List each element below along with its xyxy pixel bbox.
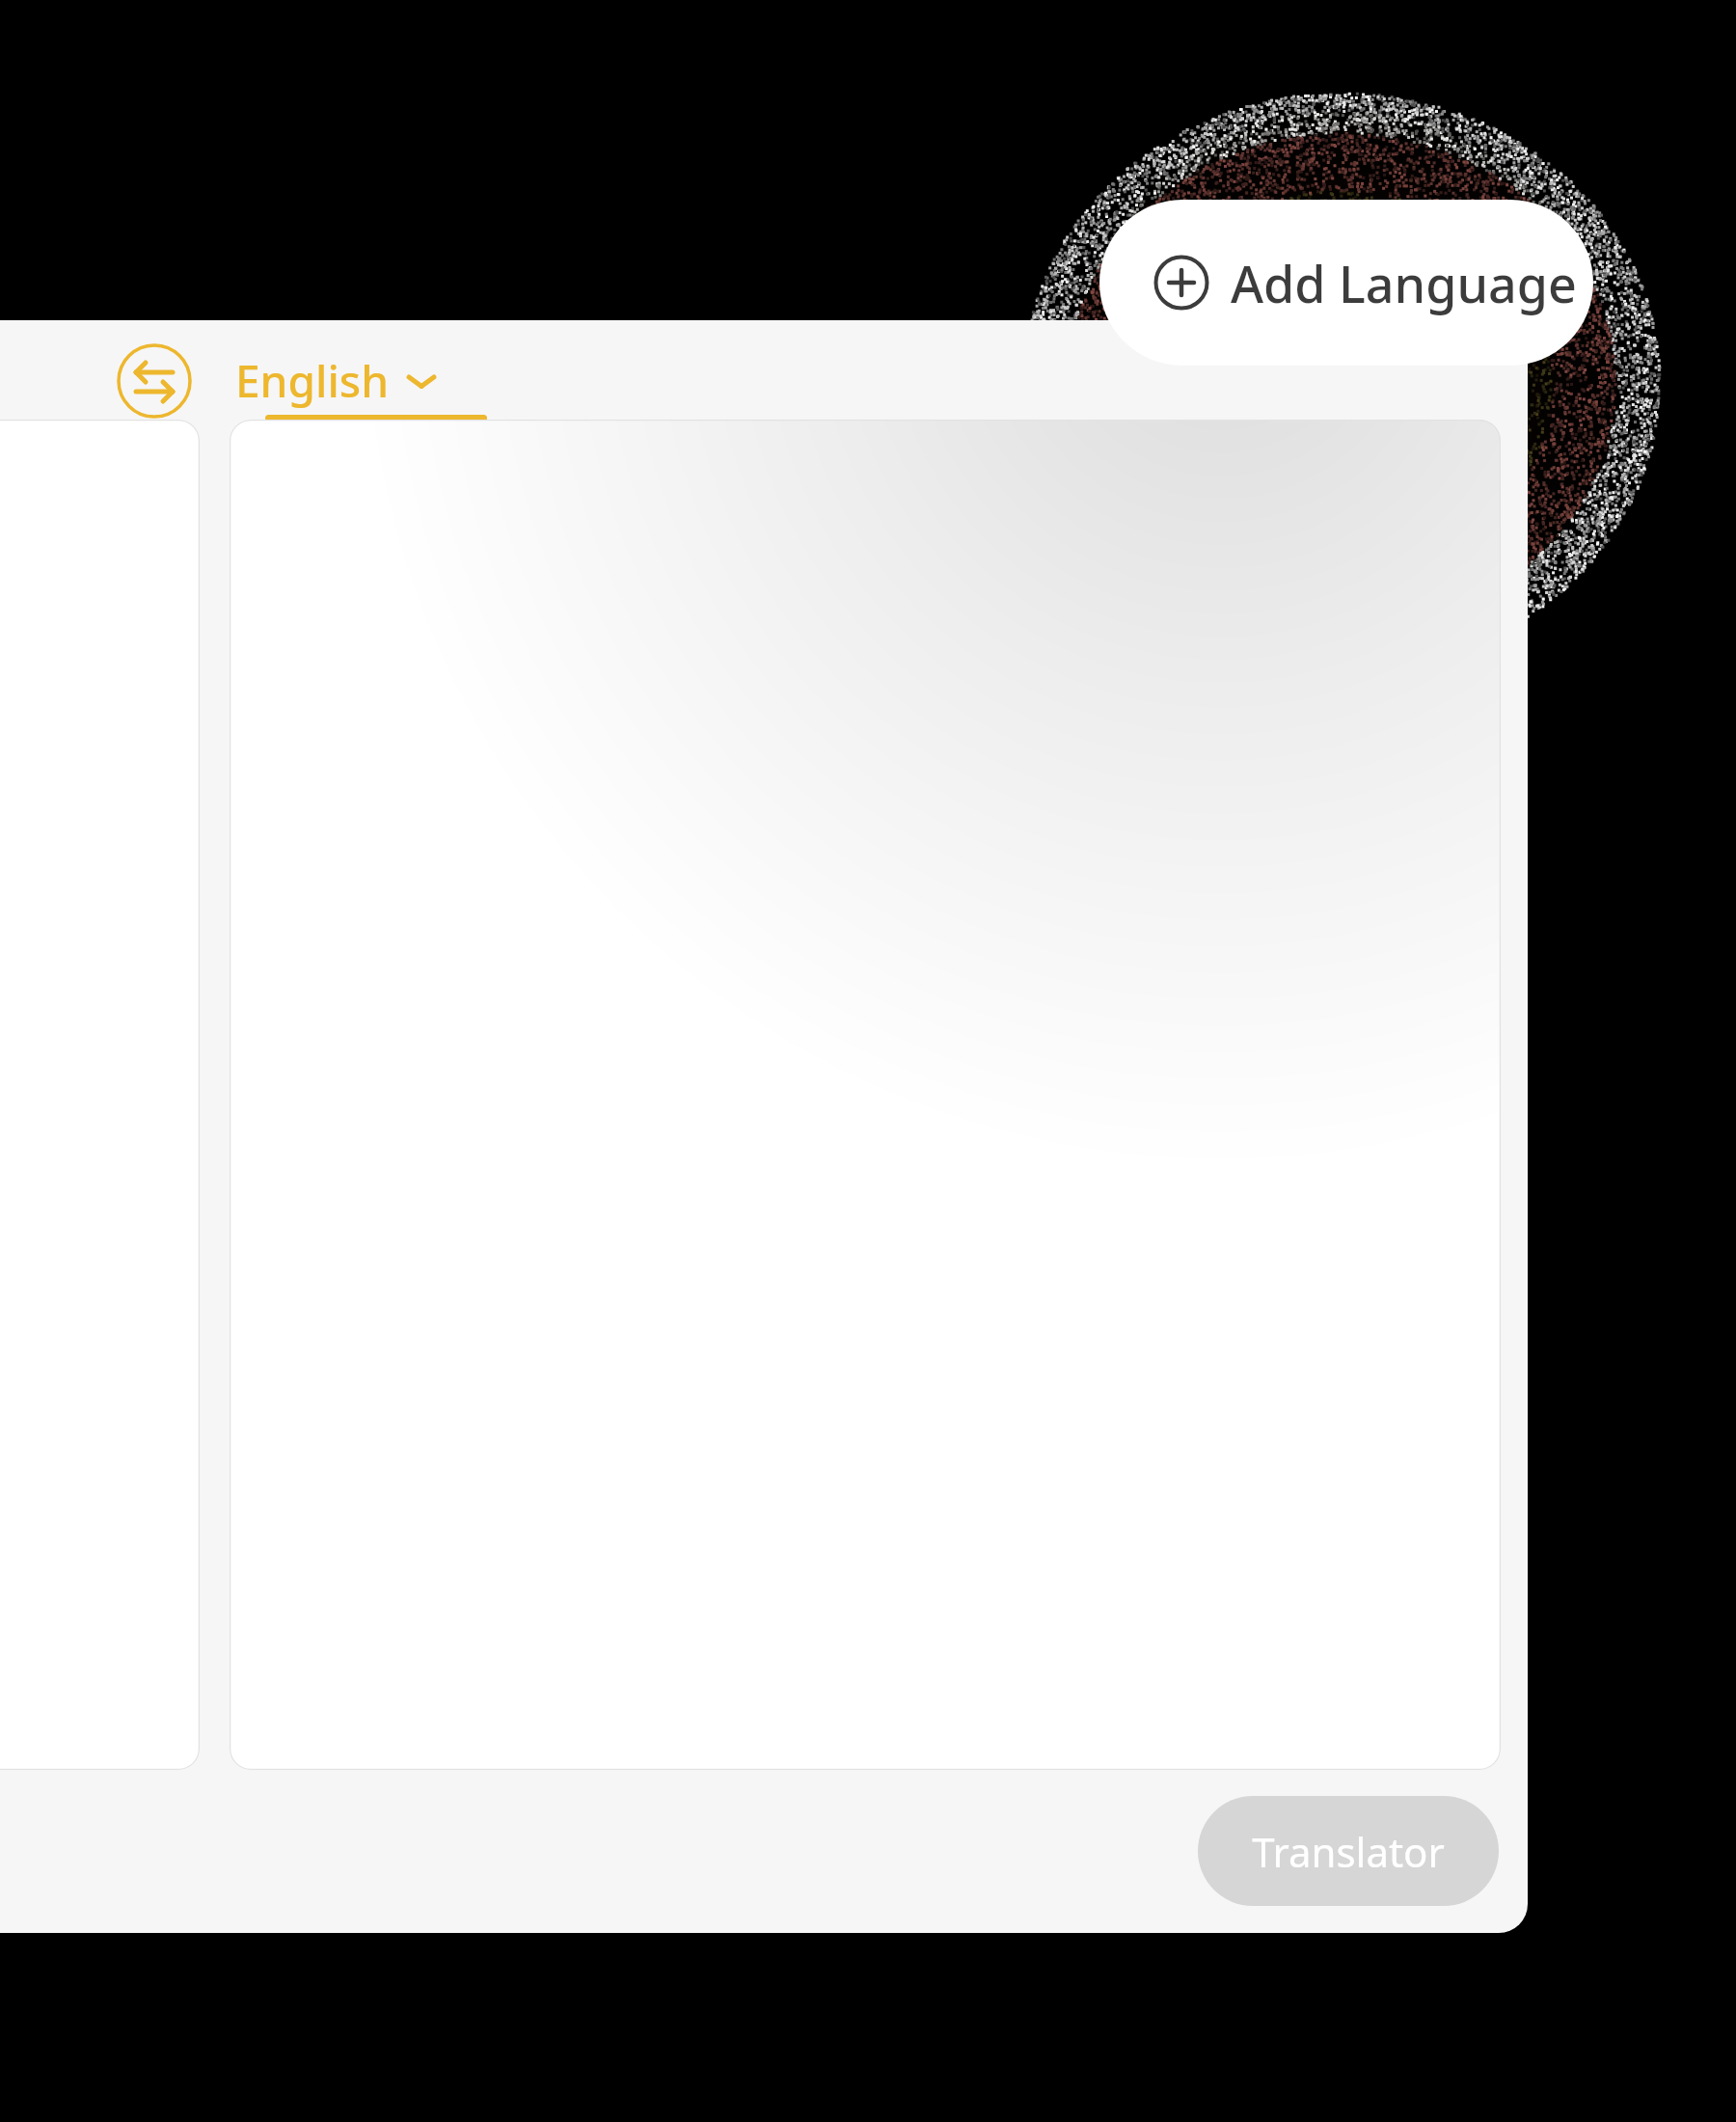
button[interactable] — [230, 420, 1501, 1770]
staticText: Add Language — [1231, 249, 1577, 317]
button[interactable]: Swap languages — [116, 342, 193, 420]
button[interactable]: Add Language — [1099, 200, 1593, 366]
staticText: Translator — [1252, 1824, 1445, 1879]
staticText: English — [235, 350, 390, 411]
button[interactable]: Translator — [1198, 1796, 1499, 1906]
button[interactable]: English — [222, 344, 436, 417]
